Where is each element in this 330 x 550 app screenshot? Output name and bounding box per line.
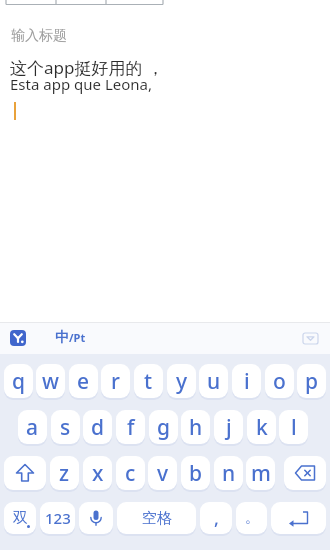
button[interactable]: f [116, 410, 145, 444]
staticText: u [207, 367, 221, 396]
staticText: c [125, 459, 136, 488]
staticText: n [222, 459, 236, 488]
staticText: s [60, 413, 71, 442]
button[interactable]: o [265, 364, 294, 398]
button[interactable]: k [247, 410, 276, 444]
button[interactable]: c [116, 456, 145, 490]
button[interactable]: u [199, 364, 228, 398]
staticText: h [189, 413, 203, 442]
button[interactable]: 空格 [117, 502, 196, 534]
button[interactable]: 123 [40, 502, 75, 534]
staticText: j [226, 413, 232, 442]
button[interactable]: q [4, 364, 33, 398]
button[interactable] [302, 332, 320, 346]
staticText: Esta app que Leona, [10, 74, 152, 94]
button[interactable]: 中/Pt [55, 329, 86, 347]
button[interactable] [10, 330, 26, 346]
staticText: b [189, 459, 203, 488]
staticText: l [291, 413, 297, 442]
button[interactable] [79, 502, 113, 534]
staticText: z [59, 459, 70, 488]
staticText: 123 [45, 508, 71, 528]
button[interactable]: e [69, 364, 98, 398]
staticText: 输入标题 [11, 27, 67, 45]
staticText: f [127, 413, 135, 442]
staticText: e [77, 367, 90, 396]
staticText: p [305, 367, 319, 396]
staticText: q [12, 367, 26, 396]
button[interactable]: m [246, 456, 275, 490]
button[interactable] [284, 456, 326, 490]
staticText: g [157, 413, 171, 442]
staticText: v [157, 459, 169, 488]
button[interactable]: r [101, 364, 130, 398]
button[interactable]: s [51, 410, 80, 444]
button[interactable]: g [149, 410, 178, 444]
staticText: m [251, 459, 271, 488]
button[interactable]: w [36, 364, 65, 398]
staticText: d [91, 413, 105, 442]
button[interactable]: y [167, 364, 196, 398]
staticText: t [144, 367, 153, 396]
button[interactable] [4, 456, 46, 490]
button[interactable]: p [297, 364, 326, 398]
staticText: w [42, 367, 59, 396]
button[interactable]: t [134, 364, 163, 398]
button[interactable]: n [214, 456, 243, 490]
button[interactable]: v [148, 456, 177, 490]
staticText: a [26, 413, 39, 442]
button[interactable] [271, 502, 326, 534]
staticText: , [214, 506, 219, 531]
staticText: 双 [13, 509, 28, 528]
staticText: y [176, 367, 188, 396]
staticText: 空格 [142, 509, 172, 528]
button[interactable]: 。 [236, 502, 267, 534]
button[interactable]: j [214, 410, 243, 444]
staticText: x [92, 459, 104, 488]
staticText: 。 [245, 509, 259, 527]
button[interactable]: a [18, 410, 47, 444]
button[interactable]: 双 [4, 502, 36, 534]
button[interactable]: b [181, 456, 210, 490]
staticText: i [244, 367, 250, 396]
button[interactable]: h [181, 410, 210, 444]
button[interactable]: i [232, 364, 261, 398]
button[interactable]: , [200, 502, 232, 534]
staticText: r [111, 367, 120, 396]
button[interactable]: x [83, 456, 112, 490]
button[interactable]: l [279, 410, 308, 444]
staticText: 这个app挺好用的 ， [10, 56, 164, 79]
staticText: k [256, 413, 268, 442]
button[interactable]: d [83, 410, 112, 444]
staticText: o [273, 367, 286, 396]
button[interactable]: z [50, 456, 79, 490]
